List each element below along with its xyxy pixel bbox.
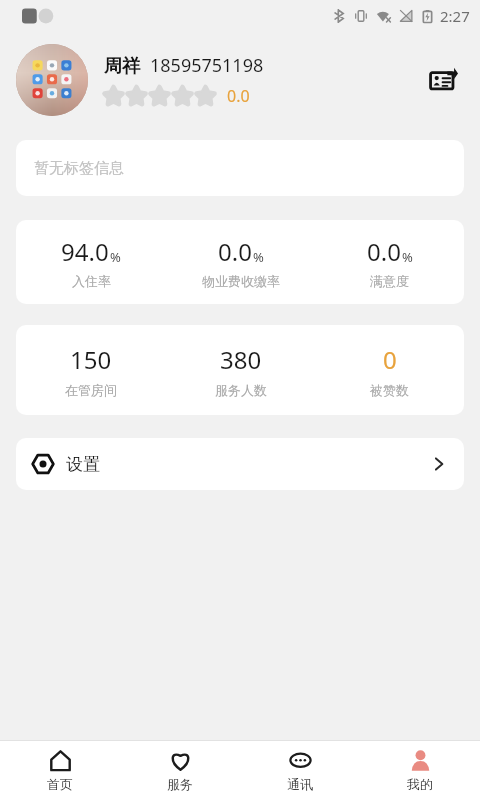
staticText: 2:27 bbox=[440, 6, 470, 26]
staticText: 暂无标签信息 bbox=[34, 159, 124, 178]
button[interactable]: 暂无标签信息 bbox=[16, 140, 464, 196]
staticText: 在管房间 bbox=[65, 382, 117, 398]
staticText: % bbox=[253, 248, 264, 266]
staticText: 服务 bbox=[167, 776, 193, 792]
staticText: 380 bbox=[220, 343, 262, 376]
button[interactable]: 首页 bbox=[0, 741, 120, 800]
button[interactable]: 94.0 bbox=[16, 220, 464, 304]
button[interactable]: 通讯 bbox=[240, 741, 360, 800]
button[interactable]: Share contact card bbox=[422, 58, 466, 102]
staticText: 满意度 bbox=[370, 273, 409, 289]
staticText: 我的 bbox=[407, 776, 433, 792]
button[interactable]: 150 bbox=[16, 325, 464, 415]
staticText: 0.0 bbox=[367, 235, 401, 268]
staticText: 通讯 bbox=[287, 776, 313, 792]
button[interactable]: Profile photo bbox=[16, 44, 88, 116]
staticText: 设置 bbox=[66, 454, 100, 475]
staticText: 18595751198 bbox=[150, 53, 264, 78]
staticText: 入住率 bbox=[72, 273, 111, 289]
staticText: % bbox=[402, 248, 413, 266]
staticText: 0.0 bbox=[218, 235, 252, 268]
staticText: 首页 bbox=[47, 776, 73, 792]
button[interactable]: 服务 bbox=[120, 741, 240, 800]
staticText: 94.0 bbox=[61, 235, 109, 268]
staticText: % bbox=[110, 248, 121, 266]
staticText: 服务人数 bbox=[215, 382, 267, 398]
staticText: 物业费收缴率 bbox=[202, 273, 280, 289]
staticText: 0.0 bbox=[227, 85, 250, 107]
button[interactable]: 设置 bbox=[16, 438, 464, 490]
staticText: 周祥 bbox=[104, 55, 140, 78]
staticText: 150 bbox=[70, 343, 112, 376]
button[interactable]: 我的 bbox=[360, 741, 480, 800]
staticText: 0 bbox=[383, 343, 397, 376]
staticText: 被赞数 bbox=[370, 382, 409, 398]
